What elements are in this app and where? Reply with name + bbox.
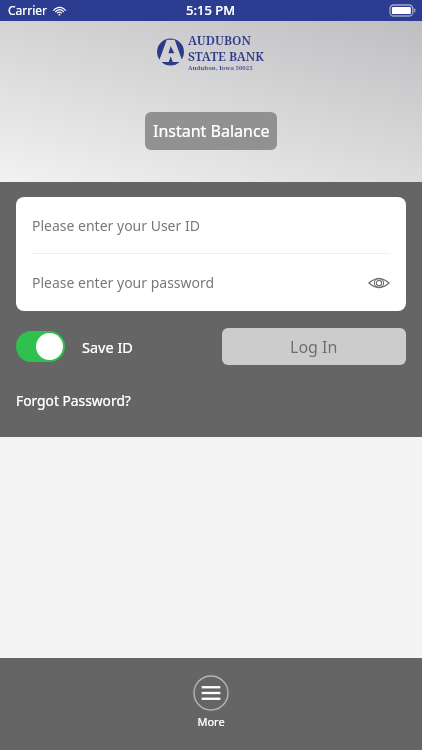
staticText: Instant Balance: [153, 120, 270, 142]
other: More: [193, 675, 229, 711]
button[interactable]: More: [193, 675, 229, 729]
staticText: Carrier: [8, 2, 48, 18]
button[interactable]: Show password: [365, 269, 393, 297]
staticText: Please enter your User ID: [32, 216, 200, 235]
staticText: STATE BANK: [188, 48, 265, 64]
button[interactable]: Please enter your password: [16, 254, 406, 311]
staticText: Save ID: [82, 337, 133, 357]
staticText: AUDUBON: [188, 32, 251, 48]
staticText: Please enter your password: [32, 273, 215, 292]
staticText: 5:15 PM: [186, 1, 236, 19]
button[interactable]: Save ID: [16, 331, 65, 362]
button[interactable]: Please enter your User ID: [16, 197, 406, 253]
button[interactable]: Forgot Password?: [16, 391, 131, 410]
staticText: Audubon, Iowa 50025: [188, 64, 253, 72]
staticText: Forgot Password?: [16, 391, 131, 410]
button[interactable]: Log In: [222, 328, 406, 365]
staticText: More: [197, 714, 225, 729]
staticText: Log In: [290, 336, 338, 358]
button[interactable]: Instant Balance: [145, 112, 277, 150]
